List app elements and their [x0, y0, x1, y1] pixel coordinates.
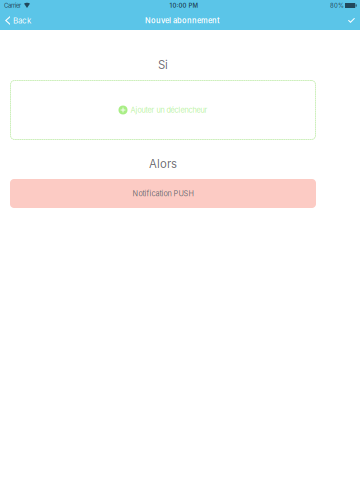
- button[interactable]: Notification PUSH: [10, 179, 316, 208]
- staticText: Back: [13, 16, 31, 25]
- staticText: Nouvel abonnement: [145, 16, 220, 25]
- staticText: Alors: [149, 157, 177, 171]
- button[interactable]: Valider: [338, 11, 360, 30]
- staticText: 10:00 PM: [169, 2, 198, 9]
- staticText: Si: [158, 58, 168, 72]
- staticText: Notification PUSH: [132, 189, 193, 198]
- button[interactable]: Back: [0, 11, 37, 30]
- staticText: Ajouter un déclencheur: [130, 106, 207, 114]
- staticText: Carrier: [4, 2, 21, 9]
- button[interactable]: Ajouter un déclencheur: [10, 80, 316, 140]
- staticText: 80%: [330, 2, 344, 9]
